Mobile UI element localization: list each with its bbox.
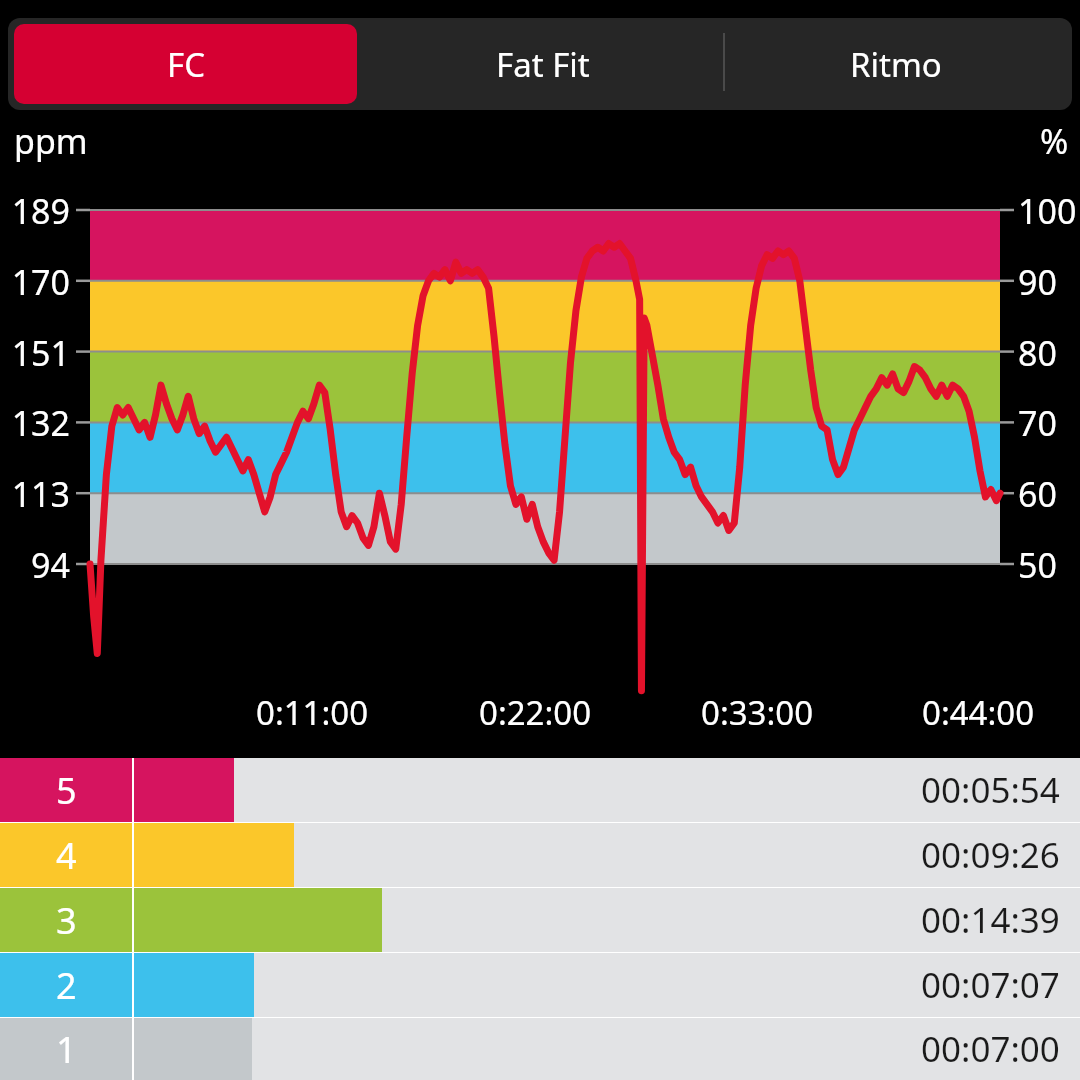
staticText: 113 (11, 471, 70, 515)
staticText: 00:07:07 (921, 961, 1060, 1009)
staticText: 50 (1018, 542, 1057, 586)
button[interactable]: FC (14, 24, 357, 104)
staticText: 151 (11, 330, 70, 374)
staticText: 94 (31, 542, 70, 586)
staticText: 3 (56, 896, 77, 945)
staticText: 00:14:39 (921, 896, 1060, 944)
staticText: FC (167, 42, 205, 87)
staticText: % (1040, 118, 1069, 164)
staticText: 80 (1018, 330, 1057, 374)
staticText: 5 (56, 766, 77, 815)
staticText: 4 (56, 831, 77, 880)
staticText: 100 (1018, 188, 1077, 232)
staticText: 00:07:00 (921, 1025, 1060, 1073)
staticText: 170 (11, 259, 70, 303)
button[interactable]: 4 (0, 823, 1080, 887)
button[interactable]: 1 (0, 1018, 1080, 1080)
staticText: 189 (11, 188, 70, 232)
staticText: 60 (1018, 471, 1057, 515)
staticText: 132 (11, 400, 70, 444)
staticText: 0:33:00 (701, 690, 814, 734)
button[interactable]: 2 (0, 953, 1080, 1017)
staticText: 90 (1018, 259, 1057, 303)
staticText: 1 (56, 1025, 77, 1074)
staticText: 00:09:26 (921, 831, 1060, 879)
staticText: 0:11:00 (256, 690, 369, 734)
button[interactable]: Fat Fit (363, 24, 723, 104)
staticText: ppm (14, 118, 88, 164)
button[interactable]: 5 (0, 758, 1080, 822)
staticText: 00:05:54 (921, 766, 1060, 814)
staticText: 0:44:00 (922, 690, 1035, 734)
staticText: 0:22:00 (479, 690, 592, 734)
staticText: 2 (56, 961, 77, 1010)
staticText: Ritmo (850, 42, 942, 87)
button[interactable]: Ritmo (726, 24, 1066, 104)
staticText: 70 (1018, 400, 1057, 444)
staticText: Fat Fit (496, 42, 590, 87)
button[interactable]: 3 (0, 888, 1080, 952)
